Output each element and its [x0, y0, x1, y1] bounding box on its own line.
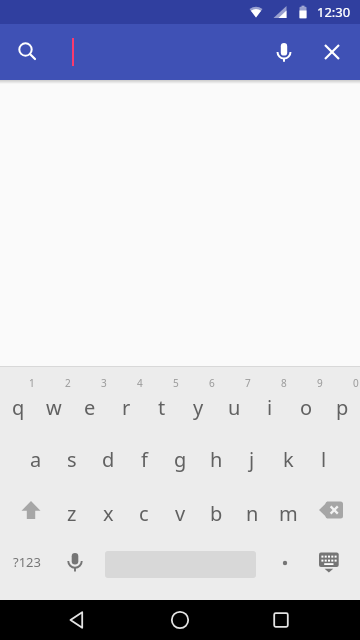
button[interactable]: p [324, 391, 360, 423]
button[interactable]: g [162, 443, 198, 475]
button[interactable]: c [126, 497, 162, 529]
staticText: z [67, 500, 77, 527]
staticText: s [67, 446, 77, 473]
staticText: k [283, 446, 294, 473]
button[interactable]: x [90, 497, 126, 529]
staticText: p [336, 394, 349, 421]
button[interactable]: j [234, 443, 270, 475]
staticText: d [102, 446, 115, 473]
button[interactable]: h [198, 443, 234, 475]
staticText: e [84, 394, 96, 421]
staticText: j [249, 446, 255, 473]
button[interactable]: z [54, 497, 90, 529]
staticText: x [103, 500, 114, 527]
staticText: 4 [137, 376, 143, 388]
staticText: 9 [317, 376, 323, 388]
staticText: y [193, 394, 204, 421]
button[interactable] [57, 600, 98, 640]
button[interactable] [96, 540, 265, 584]
button[interactable] [160, 600, 200, 640]
button[interactable]: l [306, 443, 342, 475]
staticText: ?123 [13, 553, 41, 571]
staticText: l [321, 446, 327, 473]
button[interactable]: w [36, 391, 72, 423]
button[interactable]: f [126, 443, 162, 475]
button[interactable]: i [252, 391, 288, 423]
button[interactable]: v [162, 497, 198, 529]
button[interactable] [261, 600, 301, 640]
button[interactable] [312, 32, 352, 72]
button[interactable]: e [72, 391, 108, 423]
staticText: 3 [101, 376, 107, 388]
button[interactable]: u [216, 391, 252, 423]
staticText: u [228, 394, 241, 421]
button[interactable]: y [180, 391, 216, 423]
button[interactable] [303, 540, 354, 584]
button[interactable]: m [270, 497, 306, 529]
button[interactable]: q [0, 391, 36, 423]
staticText: 8 [281, 376, 287, 388]
button[interactable]: k [270, 443, 306, 475]
staticText: 6 [209, 376, 215, 388]
staticText: g [174, 446, 187, 473]
staticText: i [267, 394, 273, 421]
staticText: c [139, 500, 149, 527]
staticText: 0 [353, 376, 359, 388]
staticText: q [12, 394, 25, 421]
button[interactable] [4, 485, 58, 534]
button[interactable] [303, 486, 358, 534]
button[interactable] [264, 32, 304, 72]
button[interactable]: b [198, 497, 234, 529]
button[interactable] [265, 540, 303, 584]
button[interactable]: ?123 [0, 540, 54, 584]
staticText: f [141, 446, 148, 473]
staticText: o [300, 394, 313, 421]
button[interactable]: s [54, 443, 90, 475]
staticText: n [246, 500, 259, 527]
button[interactable]: t [144, 391, 180, 423]
staticText: m [279, 500, 298, 527]
button[interactable] [8, 32, 48, 72]
staticText: 12:30 [317, 3, 351, 21]
staticText: 5 [173, 376, 179, 388]
staticText: w [46, 394, 62, 421]
staticText: h [210, 446, 223, 473]
staticText: v [175, 500, 186, 527]
staticText: 2 [65, 376, 71, 388]
staticText: 1 [29, 376, 35, 388]
button[interactable]: d [90, 443, 126, 475]
button[interactable]: a [18, 443, 54, 475]
staticText: t [158, 394, 166, 421]
button[interactable]: o [288, 391, 324, 423]
button[interactable]: n [234, 497, 270, 529]
staticText: b [210, 500, 223, 527]
button[interactable]: r [108, 391, 144, 423]
staticText: a [30, 446, 42, 473]
staticText: r [122, 394, 131, 421]
button[interactable] [54, 540, 96, 584]
staticText: 7 [245, 376, 251, 388]
